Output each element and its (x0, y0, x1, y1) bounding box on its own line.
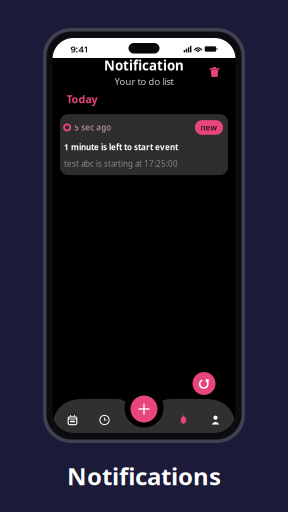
button[interactable]: 5 sec ago (60, 114, 228, 175)
button[interactable]: Calendar (56, 408, 88, 432)
button[interactable]: Refresh (192, 372, 215, 395)
staticText: 1 minute is left to start event (64, 142, 178, 152)
button[interactable]: Delete all notifications (204, 62, 224, 82)
button[interactable]: Recent (88, 408, 120, 432)
button[interactable]: Add (130, 395, 157, 422)
staticText: Notifications (67, 460, 221, 492)
staticText: Notification (104, 56, 184, 74)
staticText: new (200, 122, 217, 133)
staticText: Your to do list (114, 75, 173, 88)
staticText: 9:41 (70, 43, 88, 55)
button[interactable]: Profile (199, 408, 231, 432)
staticText: Today (66, 92, 97, 106)
staticText: test abc is starting at 17:25:00 (64, 158, 178, 169)
staticText: 5 sec ago (74, 122, 111, 133)
button[interactable]: Notifications (167, 408, 199, 432)
